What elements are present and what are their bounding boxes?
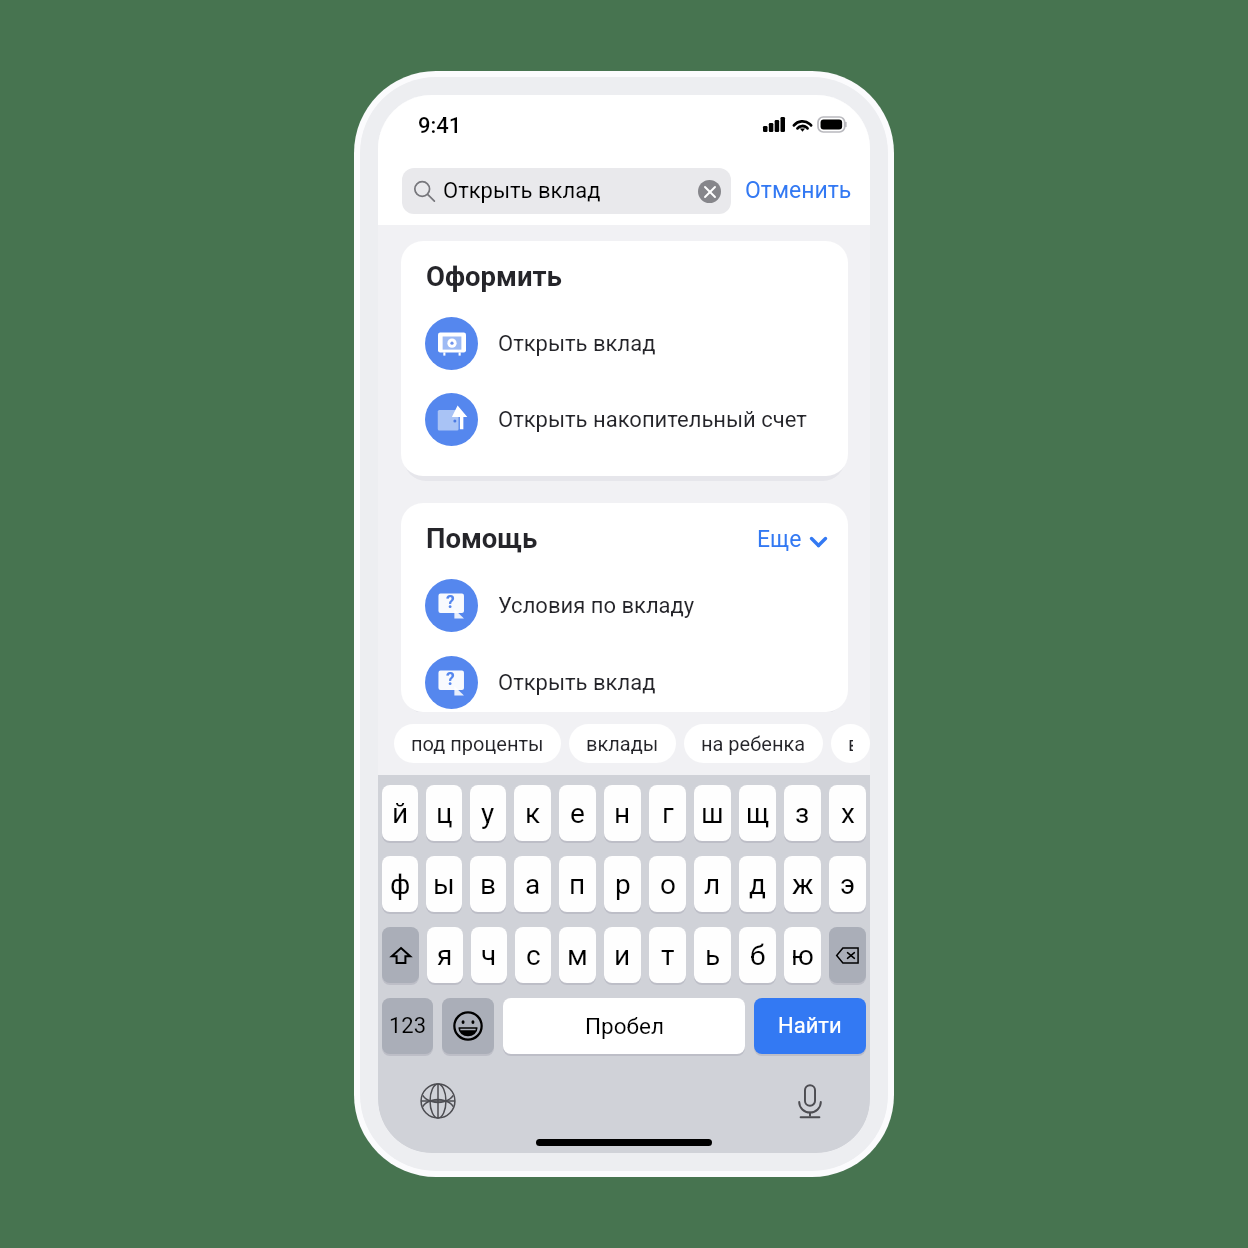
staticText: ?: [446, 669, 455, 690]
staticText: Еще: [757, 526, 802, 553]
button[interactable]: н: [604, 785, 641, 841]
button[interactable]: и: [604, 927, 641, 983]
button[interactable]: ж: [784, 856, 821, 912]
button[interactable]: ы: [426, 856, 462, 912]
button[interactable]: т: [649, 927, 686, 983]
button[interactable]: ч: [471, 927, 507, 983]
button[interactable]: Еще: [753, 522, 831, 557]
staticText: я: [437, 939, 453, 972]
staticText: к: [525, 797, 541, 830]
staticText: ?: [446, 592, 455, 613]
button[interactable]: щ: [739, 785, 776, 841]
staticText: Пробел: [585, 1013, 664, 1039]
staticText: с: [526, 939, 541, 972]
button[interactable]: Открыть вклад: [402, 168, 731, 214]
button[interactable]: ш: [694, 785, 731, 841]
button[interactable]: г: [649, 785, 686, 841]
button[interactable]: е: [559, 785, 596, 841]
staticText: Отменить: [745, 177, 852, 204]
button[interactable]: на ребенка: [684, 724, 823, 763]
button[interactable]: Найти: [754, 998, 866, 1054]
staticText: ц: [436, 797, 453, 830]
staticText: ф: [390, 868, 411, 901]
staticText: Оформить: [426, 260, 562, 292]
button[interactable]: х: [829, 785, 866, 841]
staticText: ь: [705, 939, 721, 972]
button[interactable]: б: [739, 927, 776, 983]
button[interactable]: э: [829, 856, 866, 912]
staticText: э: [840, 868, 856, 901]
staticText: Открыть вклад: [498, 331, 656, 357]
staticText: Условия по вкладу: [498, 593, 695, 619]
staticText: п: [569, 868, 586, 901]
button[interactable]: ю: [784, 927, 821, 983]
button[interactable]: 123: [382, 998, 433, 1054]
button[interactable]: д: [739, 856, 776, 912]
button[interactable]: р: [604, 856, 641, 912]
staticText: й: [392, 797, 409, 830]
button[interactable]: вклады: [569, 724, 676, 763]
staticText: з: [795, 797, 810, 830]
staticText: н: [614, 797, 631, 830]
button[interactable]: Dictate: [792, 1083, 828, 1119]
staticText: ч: [481, 939, 497, 972]
button[interactable]: ь: [694, 927, 731, 983]
staticText: ж: [792, 868, 814, 901]
button[interactable]: Clear text: [698, 180, 721, 203]
staticText: л: [704, 868, 721, 901]
staticText: х: [841, 797, 855, 830]
button[interactable]: п: [559, 856, 596, 912]
staticText: 9:41: [418, 113, 462, 139]
button[interactable]: м: [559, 927, 596, 983]
staticText: ю: [791, 939, 814, 972]
staticText: и: [614, 939, 631, 972]
button[interactable]: под проценты: [394, 724, 561, 763]
button[interactable]: Открыть вклад: [401, 317, 848, 370]
staticText: в другом: [848, 732, 853, 755]
button[interactable]: ф: [382, 856, 418, 912]
button[interactable]: у: [470, 785, 506, 841]
button[interactable]: Открыть накопительный счет: [401, 393, 848, 446]
button[interactable]: Shift: [382, 927, 419, 983]
staticText: а: [525, 868, 541, 901]
staticText: Открыть вклад: [443, 178, 698, 204]
staticText: на ребенка: [701, 732, 806, 755]
button[interactable]: к: [514, 785, 551, 841]
button[interactable]: Change keyboard language: [420, 1083, 456, 1119]
staticText: е: [570, 797, 585, 830]
staticText: Открыть накопительный счет: [498, 407, 807, 433]
staticText: д: [749, 868, 766, 901]
staticText: у: [481, 797, 495, 830]
button[interactable]: ц: [426, 785, 462, 841]
button[interactable]: в другом: [831, 724, 870, 763]
button[interactable]: с: [515, 927, 551, 983]
staticText: 123: [389, 1013, 427, 1039]
staticText: м: [567, 939, 588, 972]
button[interactable]: з: [784, 785, 821, 841]
staticText: в: [480, 868, 497, 901]
button[interactable]: Отменить: [741, 173, 856, 208]
staticText: ы: [433, 868, 455, 901]
button[interactable]: ?: [401, 579, 848, 632]
button[interactable]: л: [694, 856, 731, 912]
staticText: Помощь: [426, 522, 538, 554]
staticText: Открыть вклад: [498, 670, 656, 696]
button[interactable]: й: [382, 785, 418, 841]
staticText: о: [660, 868, 676, 901]
staticText: ш: [701, 797, 724, 830]
staticText: р: [615, 868, 631, 901]
staticText: щ: [746, 797, 770, 830]
staticText: вклады: [586, 732, 659, 755]
button[interactable]: Пробел: [503, 998, 745, 1054]
button[interactable]: я: [427, 927, 463, 983]
button[interactable]: в: [470, 856, 506, 912]
button[interactable]: ?: [401, 656, 848, 709]
button[interactable]: а: [514, 856, 551, 912]
staticText: Найти: [778, 1013, 842, 1039]
staticText: т: [661, 939, 675, 972]
staticText: г: [662, 797, 674, 830]
button[interactable]: Backspace: [829, 927, 866, 983]
button[interactable]: Emoji: [442, 998, 494, 1054]
staticText: б: [750, 939, 766, 972]
button[interactable]: о: [649, 856, 686, 912]
